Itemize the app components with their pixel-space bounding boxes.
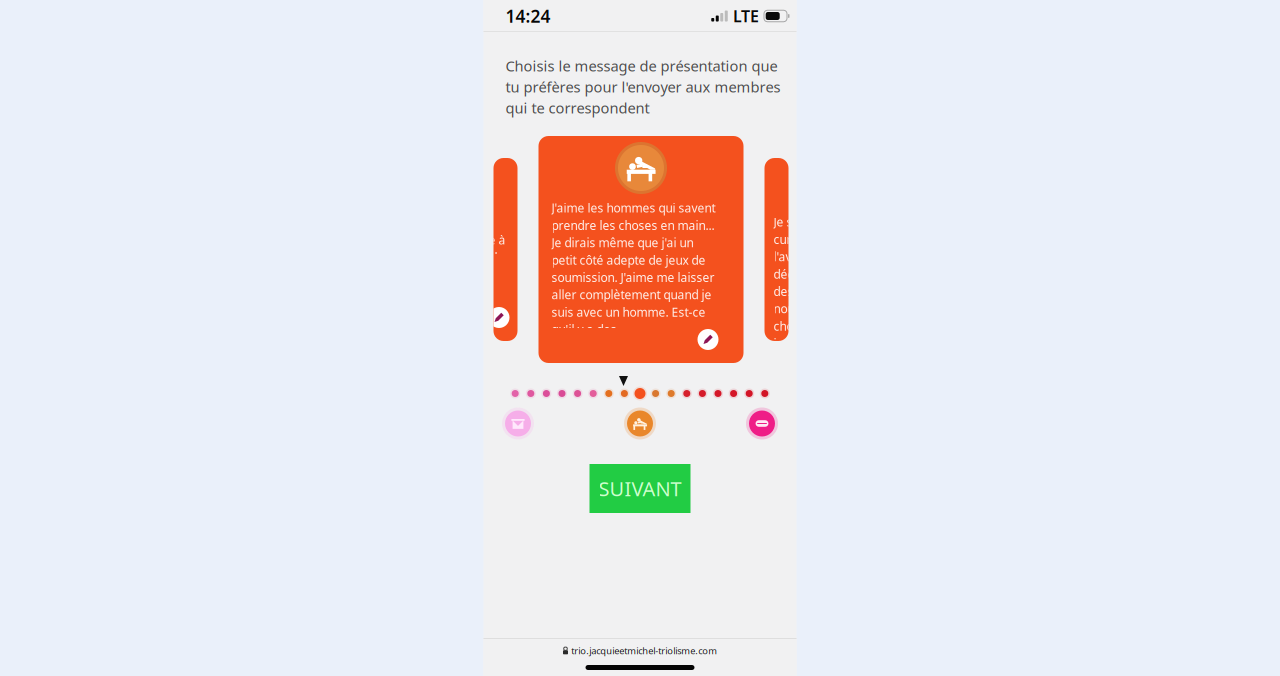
staticText: trio.jacquieetmichel-triolisme.com <box>571 644 717 657</box>
staticText: 14:24 <box>505 4 550 27</box>
button[interactable]: Message suivant <box>745 407 778 440</box>
staticText: J'aime les hommes qui savent prendre les… <box>551 200 715 337</box>
button[interactable]: Message courant <box>623 407 656 440</box>
button[interactable]: Modifier le message <box>488 307 509 328</box>
staticText: LTE <box>733 5 759 27</box>
button[interactable]: SUIVANT <box>589 464 690 513</box>
button[interactable]: Modifier le message <box>697 329 718 350</box>
staticText: J'adore passer la soirée à deux ou plus,… <box>365 232 505 300</box>
button[interactable]: Message précédent <box>501 407 534 440</box>
staticText: Je suis curieuse de l'aventure, découvri… <box>773 214 840 421</box>
staticText: Choisis le message de présentation que t… <box>505 56 780 117</box>
staticText: SUIVANT <box>598 475 681 502</box>
